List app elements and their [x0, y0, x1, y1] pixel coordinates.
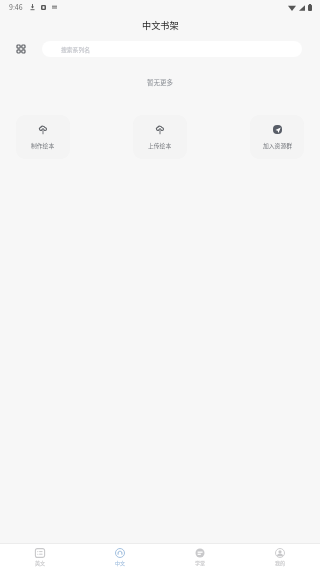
button[interactable]: 学堂	[160, 544, 240, 569]
staticText: 英文	[35, 559, 46, 566]
button[interactable]: 加入资源群	[250, 115, 304, 159]
staticText: 暂无更多	[147, 77, 173, 86]
staticText: 加入资源群	[263, 141, 292, 149]
staticText: 上传绘本	[148, 141, 172, 149]
staticText: 中文书架	[142, 18, 179, 31]
button[interactable]: 中文	[80, 544, 160, 569]
staticText: 学堂	[195, 559, 206, 566]
button[interactable]: 上传绘本	[133, 115, 187, 159]
staticText: 9:46	[9, 2, 23, 12]
button[interactable]: 制作绘本	[16, 115, 70, 159]
button[interactable]: 搜索系列名	[42, 41, 302, 57]
button[interactable]: Scan code	[13, 41, 29, 57]
button[interactable]: 英文	[0, 544, 80, 569]
staticText: 我的	[275, 559, 286, 566]
staticText: 搜索系列名	[61, 45, 90, 53]
button[interactable]: 我的	[240, 544, 320, 569]
staticText: 制作绘本	[31, 141, 55, 149]
staticText: 中文	[115, 559, 126, 566]
